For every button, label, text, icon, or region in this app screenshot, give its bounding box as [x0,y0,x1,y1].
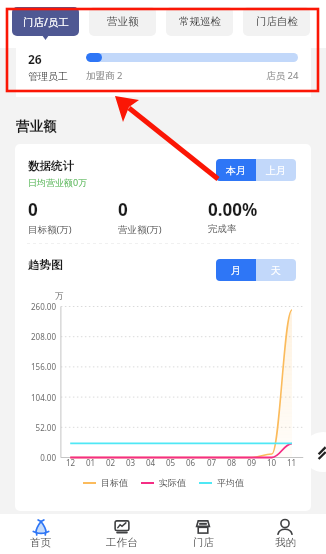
staticText: 06 [186,457,196,468]
staticText: 0.00% [208,198,258,221]
button[interactable]: 首页 [0,514,81,554]
staticText: 天 [271,264,281,277]
staticText: 10 [267,457,277,468]
staticText: 门店自检 [256,15,298,28]
staticText: 营业额(万) [118,223,162,236]
button[interactable]: 门店自检 [243,7,310,36]
button[interactable]: 常规巡检 [166,7,233,36]
button[interactable]: More [303,432,326,472]
staticText: 目标额(万) [28,223,72,236]
staticText: 门店 [193,536,214,549]
button[interactable]: 上月 [256,159,296,181]
staticText: 01 [86,457,96,468]
button[interactable]: 营业额 [89,7,156,36]
staticText: 0 [28,198,38,221]
staticText: 03 [126,457,136,468]
staticText: 目标值 [101,477,128,488]
staticText: 09 [247,457,257,468]
staticText: 上月 [266,164,286,177]
staticText: 07 [207,457,217,468]
staticText: 26 [28,51,42,67]
staticText: 02 [106,457,116,468]
staticText: 05 [166,457,176,468]
staticText: 数据统计 [28,159,74,173]
button[interactable]: 天 [256,259,296,281]
staticText: 万 [55,291,64,302]
staticText: 0 [118,198,128,221]
staticText: 常规巡检 [179,15,221,28]
staticText: 0.00 [0,452,56,463]
staticText: 趋势图 [28,258,63,272]
staticText: 完成率 [208,223,237,235]
staticText: 营业额 [16,118,57,135]
staticText: 208.00 [0,331,56,342]
staticText: 平均值 [217,477,244,488]
button[interactable]: 工作台 [81,514,162,554]
button[interactable]: 月 [216,259,256,281]
button[interactable]: 门店/员工 [12,7,79,36]
staticText: 我的 [275,536,296,549]
staticText: 管理员工 [28,70,68,83]
staticText: 260.00 [0,301,56,312]
staticText: 52.00 [0,422,56,433]
staticText: 门店/员工 [23,15,69,29]
staticText: 156.00 [0,361,56,372]
staticText: 日均营业额0万 [28,176,88,188]
button[interactable]: 本月 [216,159,256,181]
button[interactable]: 门店 [162,514,244,554]
staticText: 08 [227,457,237,468]
staticText: 工作台 [106,536,138,549]
staticText: 实际值 [159,477,186,488]
staticText: 店员 24 [266,69,299,82]
staticText: 月 [231,264,241,277]
staticText: 11 [287,457,297,468]
staticText: 04 [146,457,156,468]
staticText: 12 [66,457,76,468]
staticText: 本月 [226,164,246,177]
staticText: 104.00 [0,392,56,403]
button[interactable]: 我的 [244,514,326,554]
staticText: 营业额 [107,15,139,28]
staticText: 首页 [30,536,51,549]
staticText: 加盟商 2 [86,69,123,82]
